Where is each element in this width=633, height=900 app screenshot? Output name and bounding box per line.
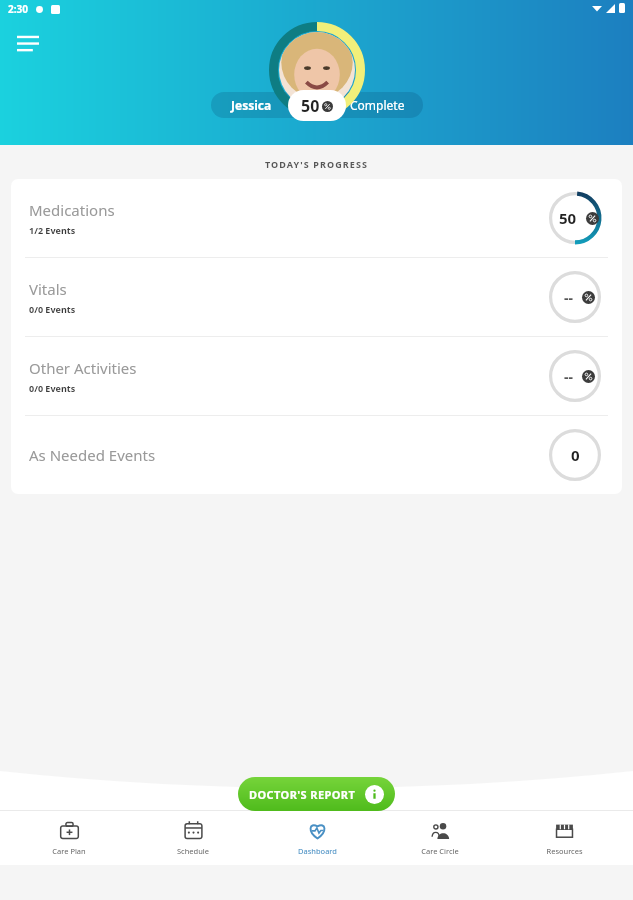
button[interactable]: Care Plan bbox=[14, 810, 124, 865]
button[interactable]: Resources bbox=[509, 810, 619, 865]
staticText: DOCTOR'S REPORT bbox=[249, 787, 356, 802]
staticText: -- bbox=[564, 288, 573, 307]
button[interactable]: DOCTOR'S REPORT bbox=[238, 777, 395, 811]
button[interactable]: Dashboard bbox=[262, 810, 372, 865]
button[interactable]: Care Circle bbox=[385, 810, 495, 865]
staticText: Care Plan bbox=[52, 846, 86, 856]
staticText: 0 bbox=[571, 445, 580, 465]
staticText: TODAY'S PROGRESS bbox=[0, 158, 633, 170]
staticText: 1/2 Events bbox=[29, 224, 76, 236]
staticText: Resources bbox=[546, 846, 583, 856]
button[interactable]: Medications bbox=[11, 179, 622, 257]
button[interactable]: Menu bbox=[10, 26, 46, 62]
button[interactable]: As Needed Events bbox=[11, 416, 622, 494]
staticText: Jessica bbox=[231, 97, 272, 113]
staticText: 50 bbox=[301, 95, 320, 117]
staticText: 0/0 Events bbox=[29, 303, 76, 315]
button[interactable]: Vitals bbox=[11, 258, 622, 336]
staticText: 2:30 bbox=[8, 2, 28, 16]
button[interactable]: Other Activities bbox=[11, 337, 622, 415]
staticText: Schedule bbox=[177, 846, 209, 856]
button[interactable]: Schedule bbox=[138, 810, 248, 865]
staticText: Other Activities bbox=[29, 358, 137, 378]
staticText: 50 bbox=[559, 208, 577, 228]
button[interactable]: Profile bbox=[269, 22, 365, 118]
staticText: Care Circle bbox=[421, 846, 459, 856]
staticText: Vitals bbox=[29, 279, 67, 299]
staticText: Dashboard bbox=[298, 846, 337, 856]
staticText: -- bbox=[564, 367, 573, 386]
staticText: As Needed Events bbox=[29, 445, 156, 465]
staticText: 0/0 Events bbox=[29, 382, 76, 394]
button[interactable]: Jessica bbox=[211, 92, 423, 118]
staticText: Complete bbox=[350, 97, 405, 113]
staticText: Medications bbox=[29, 200, 115, 220]
